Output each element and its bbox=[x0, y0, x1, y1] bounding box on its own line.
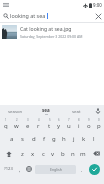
button[interactable]: Voice input bbox=[91, 105, 104, 116]
staticText: 9:00 bbox=[93, 2, 102, 8]
staticText: o bbox=[87, 122, 91, 130]
button[interactable]: ?123 bbox=[1, 161, 15, 177]
staticText: l bbox=[93, 135, 95, 143]
button[interactable]: 9 bbox=[84, 116, 94, 131]
staticText: v bbox=[51, 150, 55, 158]
button[interactable]: Backspace bbox=[88, 146, 104, 161]
button[interactable]: 4 bbox=[33, 116, 44, 131]
staticText: g bbox=[52, 135, 56, 143]
staticText: s bbox=[21, 135, 24, 143]
button[interactable]: Clear search bbox=[93, 11, 103, 21]
button[interactable]: d bbox=[28, 131, 39, 146]
staticText: n bbox=[71, 150, 75, 158]
button[interactable]: 3 bbox=[22, 116, 33, 131]
staticText: . bbox=[81, 166, 83, 173]
staticText: w bbox=[14, 122, 19, 130]
button[interactable]: v bbox=[48, 146, 58, 161]
button[interactable]: 6 bbox=[54, 116, 64, 131]
button[interactable]: j bbox=[69, 131, 79, 146]
staticText: 8 bbox=[78, 118, 80, 122]
button[interactable]: season bbox=[0, 105, 31, 116]
button[interactable]: Shift bbox=[0, 146, 17, 161]
button[interactable]: Change language bbox=[24, 161, 34, 177]
staticText: k bbox=[82, 135, 86, 143]
button[interactable]: 1 bbox=[0, 116, 11, 131]
staticText: y bbox=[57, 122, 61, 130]
button[interactable]: . bbox=[77, 161, 86, 177]
button[interactable]: g bbox=[49, 131, 59, 146]
staticText: 5 bbox=[49, 118, 51, 122]
button[interactable]: f bbox=[39, 131, 49, 146]
staticText: a bbox=[10, 135, 14, 143]
button[interactable]: x bbox=[28, 146, 38, 161]
staticText: 4 bbox=[38, 118, 40, 122]
button[interactable]: a bbox=[6, 131, 17, 146]
button[interactable]: 7 bbox=[64, 116, 74, 131]
staticText: 9 bbox=[88, 118, 90, 122]
staticText: t bbox=[48, 122, 51, 130]
button[interactable]: sea bbox=[31, 105, 61, 116]
staticText: seat bbox=[72, 108, 81, 114]
button[interactable]: looking at sea bbox=[10, 12, 93, 19]
staticText: i bbox=[78, 122, 80, 130]
staticText: 3 bbox=[27, 118, 29, 122]
button[interactable]: 0 bbox=[94, 116, 104, 131]
button[interactable]: k bbox=[79, 131, 89, 146]
staticText: , bbox=[19, 166, 21, 173]
staticText: c bbox=[42, 150, 45, 158]
staticText: 7 bbox=[68, 118, 70, 122]
staticText: f bbox=[43, 135, 46, 143]
button[interactable]: 5 bbox=[44, 116, 54, 131]
button[interactable]: s bbox=[17, 131, 28, 146]
staticText: j bbox=[73, 135, 75, 143]
staticText: h bbox=[62, 135, 66, 143]
staticText: season bbox=[8, 108, 23, 114]
button[interactable]: Cat looking at sea.jpg bbox=[0, 23, 104, 41]
staticText: 1 bbox=[5, 118, 7, 122]
button[interactable]: h bbox=[59, 131, 69, 146]
button[interactable]: z bbox=[17, 146, 28, 161]
staticText: u bbox=[67, 122, 71, 130]
button[interactable]: 2 bbox=[11, 116, 22, 131]
staticText: m bbox=[80, 150, 86, 158]
staticText: 2 bbox=[16, 118, 18, 122]
staticText: p bbox=[97, 122, 101, 130]
staticText: Saturday, September 3 2022 09:00 AM bbox=[20, 34, 83, 39]
staticText: 0 bbox=[98, 118, 100, 122]
staticText: looking at sea bbox=[10, 12, 46, 19]
button[interactable]: seat bbox=[61, 105, 91, 116]
button[interactable]: n bbox=[68, 146, 78, 161]
staticText: b bbox=[61, 150, 65, 158]
button[interactable]: Enter bbox=[86, 161, 103, 177]
staticText: English bbox=[50, 167, 62, 172]
button[interactable]: c bbox=[38, 146, 48, 161]
staticText: r bbox=[37, 122, 40, 130]
button[interactable]: , bbox=[15, 161, 24, 177]
staticText: x bbox=[31, 150, 35, 158]
staticText: Cat looking at sea.jpg bbox=[20, 26, 72, 33]
other: Search bbox=[3, 13, 9, 19]
staticText: sea bbox=[42, 107, 50, 113]
other: Menu bbox=[3, 3, 9, 7]
staticText: z bbox=[21, 150, 24, 158]
staticText: e bbox=[26, 122, 30, 130]
staticText: 6 bbox=[58, 118, 60, 122]
button[interactable]: English bbox=[35, 165, 76, 174]
staticText: q bbox=[4, 122, 8, 130]
staticText: d bbox=[32, 135, 36, 143]
button[interactable]: 8 bbox=[74, 116, 84, 131]
staticText: ?123 bbox=[4, 166, 13, 172]
button[interactable]: m bbox=[78, 146, 88, 161]
button[interactable]: l bbox=[89, 131, 99, 146]
button[interactable]: b bbox=[58, 146, 68, 161]
